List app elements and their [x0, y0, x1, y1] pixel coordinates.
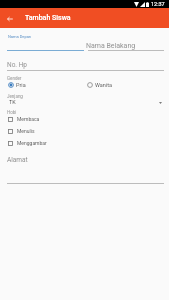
button[interactable]: Menulis: [8, 128, 35, 134]
button[interactable]: Wanita: [87, 82, 112, 88]
staticText: 12:37: [151, 1, 165, 7]
staticText: TK: [9, 99, 16, 105]
button[interactable]: TK: [7, 97, 164, 106]
button[interactable]: Membaca: [8, 116, 40, 122]
staticText: Nama Depan: [8, 34, 32, 39]
button[interactable]: Pria: [8, 82, 26, 88]
button[interactable]: Menggambar: [8, 140, 47, 146]
staticText: Nama Belakang: [86, 42, 136, 50]
staticText: Gender: [7, 76, 22, 81]
staticText: Tambah Siswa: [25, 14, 71, 22]
button[interactable]: Back: [0, 9, 19, 28]
staticText: Hobi: [7, 110, 17, 115]
staticText: Menggambar: [17, 140, 47, 146]
staticText: Alamat: [7, 156, 28, 164]
staticText: Menulis: [17, 128, 35, 134]
staticText: Jenjang: [7, 94, 23, 99]
staticText: No. Hp: [7, 61, 27, 69]
staticText: Wanita: [95, 82, 112, 88]
staticText: Membaca: [17, 116, 40, 122]
staticText: Pria: [16, 82, 26, 88]
